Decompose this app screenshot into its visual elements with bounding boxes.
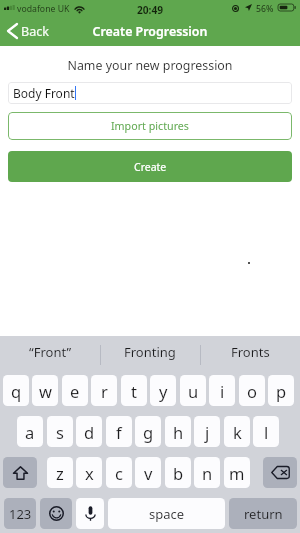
staticText: vodafone UK bbox=[17, 3, 70, 15]
button[interactable]: x bbox=[76, 457, 102, 488]
other: Back bbox=[8, 24, 17, 38]
button[interactable]: Create bbox=[8, 151, 292, 182]
button[interactable]: p bbox=[268, 375, 294, 406]
button[interactable]: return bbox=[229, 498, 297, 529]
button[interactable]: g bbox=[135, 416, 161, 447]
button[interactable]: c bbox=[106, 457, 132, 488]
button[interactable]: Back bbox=[8, 16, 50, 46]
staticText: 123 bbox=[9, 505, 32, 523]
button[interactable]: s bbox=[47, 416, 73, 447]
staticText: g bbox=[143, 421, 154, 443]
staticText: Body Front bbox=[13, 85, 75, 101]
button[interactable]: a bbox=[17, 416, 43, 447]
button[interactable]: l bbox=[253, 416, 279, 447]
button[interactable]: “Front” bbox=[0, 336, 100, 368]
staticText: s bbox=[56, 421, 64, 443]
staticText: y bbox=[159, 380, 168, 402]
button[interactable]: r bbox=[91, 375, 117, 406]
button[interactable]: t bbox=[121, 375, 147, 406]
staticText: Fronting bbox=[124, 343, 176, 361]
staticText: Back bbox=[21, 23, 50, 40]
button[interactable]: k bbox=[224, 416, 250, 447]
staticText: w bbox=[39, 380, 52, 402]
button[interactable]: b bbox=[165, 457, 191, 488]
button[interactable]: h bbox=[165, 416, 191, 447]
staticText: “Front” bbox=[29, 343, 72, 361]
button[interactable]: Dictate bbox=[76, 498, 104, 529]
staticText: h bbox=[173, 421, 184, 443]
staticText: i bbox=[220, 380, 225, 402]
staticText: Create bbox=[134, 160, 167, 174]
button[interactable]: 123 bbox=[4, 498, 36, 529]
staticText: t bbox=[131, 380, 137, 402]
staticText: e bbox=[70, 380, 80, 402]
staticText: q bbox=[11, 380, 22, 402]
staticText: p bbox=[276, 380, 287, 402]
button[interactable]: m bbox=[224, 457, 250, 488]
staticText: k bbox=[233, 421, 242, 443]
staticText: r bbox=[101, 380, 108, 402]
staticText: 56% bbox=[256, 3, 274, 15]
button[interactable]: v bbox=[135, 457, 161, 488]
button[interactable]: y bbox=[150, 375, 176, 406]
staticText: 20:49 bbox=[0, 3, 300, 17]
staticText: u bbox=[188, 380, 199, 402]
staticText: v bbox=[144, 462, 153, 484]
staticText: l bbox=[264, 421, 269, 443]
button[interactable]: u bbox=[180, 375, 206, 406]
button[interactable]: w bbox=[32, 375, 58, 406]
staticText: z bbox=[56, 462, 64, 484]
staticText: c bbox=[115, 462, 123, 484]
staticText: Fronts bbox=[231, 343, 270, 361]
button[interactable]: Shift bbox=[3, 457, 37, 488]
button[interactable]: d bbox=[76, 416, 102, 447]
staticText: space bbox=[149, 505, 185, 523]
staticText: d bbox=[84, 421, 95, 443]
button[interactable]: q bbox=[3, 375, 29, 406]
button[interactable]: Import pictures bbox=[8, 112, 292, 140]
button[interactable]: o bbox=[239, 375, 265, 406]
button[interactable]: f bbox=[106, 416, 132, 447]
staticText: x bbox=[85, 462, 94, 484]
button[interactable]: Backspace bbox=[263, 457, 297, 488]
button[interactable]: n bbox=[194, 457, 220, 488]
staticText: a bbox=[25, 421, 35, 443]
staticText: Create Progression bbox=[0, 23, 300, 40]
button[interactable]: i bbox=[209, 375, 235, 406]
staticText: Import pictures bbox=[111, 119, 189, 134]
button[interactable]: Body Front bbox=[8, 82, 292, 104]
staticText: return bbox=[244, 505, 283, 523]
staticText: m bbox=[229, 462, 245, 484]
button[interactable]: z bbox=[47, 457, 73, 488]
staticText: j bbox=[205, 421, 210, 443]
staticText: b bbox=[173, 462, 184, 484]
staticText: Name your new progression bbox=[0, 57, 300, 74]
button[interactable]: e bbox=[62, 375, 88, 406]
button[interactable]: space bbox=[108, 498, 225, 529]
staticText: f bbox=[116, 421, 122, 443]
button[interactable]: Fronts bbox=[200, 336, 300, 368]
button[interactable]: j bbox=[194, 416, 220, 447]
staticText: n bbox=[202, 462, 213, 484]
staticText: o bbox=[247, 380, 257, 402]
button[interactable]: Emoji bbox=[40, 498, 72, 529]
button[interactable]: Fronting bbox=[100, 336, 200, 368]
